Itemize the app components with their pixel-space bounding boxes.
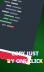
staticText: BY ONE CLICK (7, 57, 43, 64)
staticText: COPY JUST (11, 50, 38, 57)
